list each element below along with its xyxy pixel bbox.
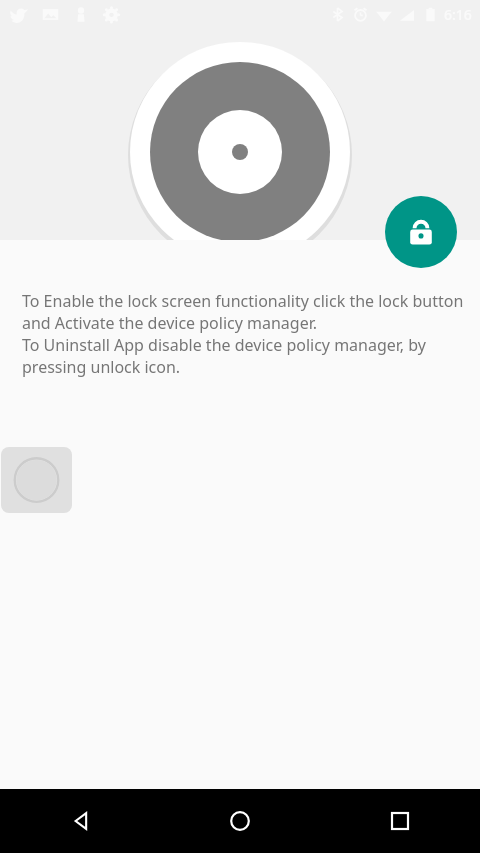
button[interactable]: Recent apps bbox=[320, 789, 480, 853]
button[interactable]: Home bbox=[160, 789, 320, 853]
staticText: To Enable the lock screen functionality … bbox=[22, 290, 464, 378]
button[interactable]: Back bbox=[0, 789, 160, 853]
staticText: 6:16 bbox=[444, 5, 472, 24]
button[interactable]: Lock device bbox=[385, 196, 457, 268]
button[interactable]: Device preview bbox=[1, 447, 72, 513]
